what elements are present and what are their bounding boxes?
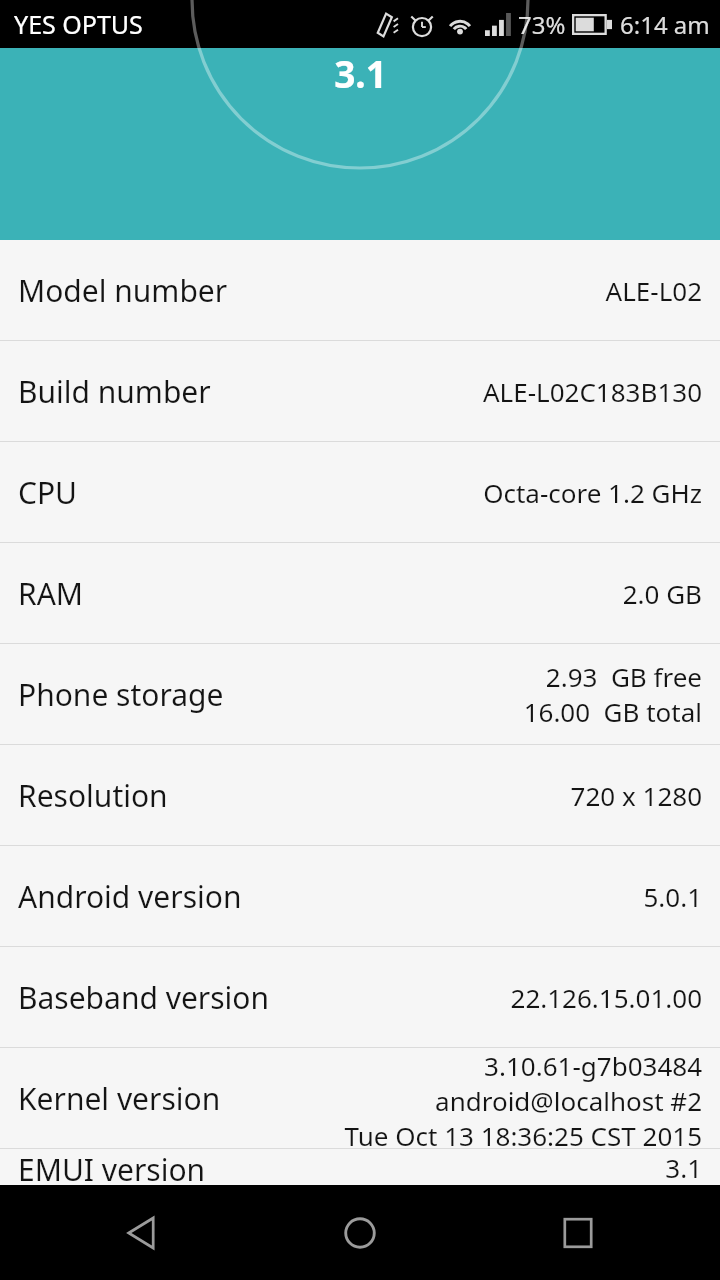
staticText: EMUI version xyxy=(18,1149,665,1185)
staticText: ALE-L02 xyxy=(605,273,702,308)
staticText: 720 x 1280 xyxy=(570,778,702,813)
staticText: Build number xyxy=(18,371,483,412)
staticText: 3.10.61-g7b03484 xyxy=(484,1048,702,1083)
staticText: Tue Oct 13 18:36:25 CST 2015 xyxy=(344,1118,702,1148)
staticText: 22.126.15.01.00 xyxy=(510,980,702,1015)
button[interactable]: Resolution xyxy=(0,745,720,846)
staticText: Octa-core 1.2 GHz xyxy=(483,475,702,510)
button[interactable]: Home xyxy=(285,1185,435,1280)
staticText: 2.0 GB xyxy=(622,576,702,611)
staticText: 2.93 GB free xyxy=(545,659,702,694)
button[interactable]: RAM xyxy=(0,543,720,644)
staticText: android@localhost #2 xyxy=(435,1083,702,1118)
staticText: Android version xyxy=(18,876,643,917)
staticText: 6:14 am xyxy=(620,8,710,41)
button[interactable]: Baseband version xyxy=(0,947,720,1048)
staticText: CPU xyxy=(18,472,483,513)
staticText: 3.1 xyxy=(665,1150,702,1185)
staticText: Model number xyxy=(18,270,605,311)
staticText: ALE-L02C183B130 xyxy=(483,374,702,409)
staticText: YES OPTUS xyxy=(14,7,143,41)
staticText: 3.1 xyxy=(334,48,387,98)
staticText: RAM xyxy=(18,573,622,614)
button[interactable]: Android version xyxy=(0,846,720,947)
staticText: Kernel version xyxy=(18,1078,344,1119)
staticText: Baseband version xyxy=(18,977,510,1018)
button[interactable]: Model number xyxy=(0,240,720,341)
button[interactable]: CPU xyxy=(0,442,720,543)
button[interactable]: Recent apps xyxy=(503,1185,653,1280)
button[interactable]: Phone storage xyxy=(0,644,720,745)
button[interactable]: Back xyxy=(68,1185,218,1280)
button[interactable]: Kernel version xyxy=(0,1048,720,1149)
staticText: 5.0.1 xyxy=(643,879,702,914)
staticText: 16.00 GB total xyxy=(523,694,702,729)
staticText: Phone storage xyxy=(18,674,523,715)
button[interactable]: Build number xyxy=(0,341,720,442)
staticText: Resolution xyxy=(18,775,570,816)
button[interactable]: EMUI version xyxy=(0,1149,720,1185)
staticText: 73% xyxy=(518,8,566,41)
